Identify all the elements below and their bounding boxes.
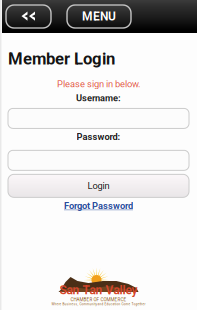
button[interactable]: Login xyxy=(8,174,189,197)
staticText: MENU xyxy=(82,9,116,24)
staticText: Member Login xyxy=(8,49,115,68)
staticText: Login xyxy=(87,180,109,191)
button[interactable]: MENU xyxy=(67,5,131,28)
staticText: Password: xyxy=(76,131,120,142)
staticText: Forgot Password xyxy=(64,200,133,211)
staticText: Where Business, Community and Education … xyxy=(51,302,145,306)
staticText: San Tan Valley xyxy=(59,283,137,297)
staticText: Username: xyxy=(76,92,121,103)
staticText: Please sign in below. xyxy=(57,78,140,89)
button[interactable]: Back xyxy=(6,5,51,28)
button[interactable]: Forgot Password xyxy=(64,200,133,211)
staticText: CHAMBER OF COMMERCE xyxy=(70,297,126,302)
